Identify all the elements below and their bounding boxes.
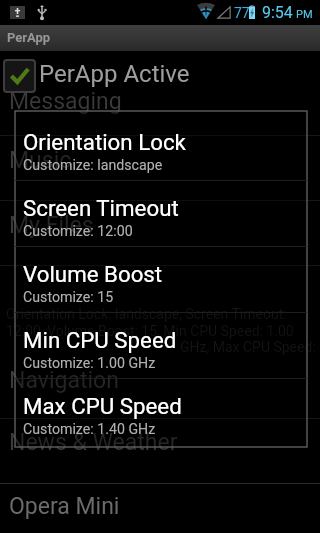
other: USB connected (37, 5, 47, 20)
staticText: Customize: 1.00 GHz (23, 355, 156, 372)
staticText: GHz, Max CPU Speed: 1.40 GHz (180, 339, 320, 355)
staticText: My Files (9, 212, 94, 239)
staticText: PerApp (7, 30, 51, 45)
staticText: Customize: 12:00 (23, 223, 133, 240)
staticText: PerApp Active (39, 60, 190, 88)
button[interactable]: Volume Boost (15, 247, 307, 312)
button[interactable]: Max CPU Speed (15, 379, 307, 444)
staticText: 12:00, Volume Boost: 15, Min CPU Speed: … (6, 323, 294, 339)
staticText: Orientation Lock: landscape, Screen Time… (6, 306, 287, 322)
staticText: 9:54 (262, 3, 293, 22)
staticText: Customize: landscape (23, 157, 163, 174)
staticText: Messaging (9, 88, 122, 115)
staticText: Max CPU Speed (23, 393, 182, 419)
other: Battery (249, 5, 255, 19)
staticText: Customize: 1.40 GHz (23, 421, 156, 438)
staticText: Min CPU Speed (23, 327, 177, 353)
staticText: PM (296, 8, 313, 21)
staticText: 77 (234, 5, 250, 21)
button[interactable]: PerApp Active (0, 53, 320, 92)
staticText: News & Weather (9, 429, 178, 456)
staticText: Screen Timeout (23, 195, 179, 221)
button[interactable]: Messaging (0, 82, 320, 118)
staticText: Opera Mini (9, 493, 120, 520)
button[interactable]: News & Weather (0, 423, 320, 459)
staticText: Volume Boost (23, 261, 163, 287)
button[interactable]: Screen Timeout (15, 181, 307, 246)
button[interactable]: Orientation Lock (15, 115, 307, 180)
other: Download (10, 6, 25, 19)
button[interactable]: My Files (0, 206, 320, 242)
button[interactable]: Navigation (0, 361, 320, 397)
button[interactable]: Music (0, 141, 320, 177)
button[interactable]: Opera Mini (0, 487, 320, 523)
staticText: Navigation (9, 367, 119, 394)
staticText: Orientation Lock (23, 129, 186, 155)
other: Signal (217, 6, 231, 19)
button[interactable]: Min CPU Speed (15, 313, 307, 378)
other: Wi-Fi (197, 5, 215, 19)
staticText: Customize: 15 (23, 289, 114, 306)
staticText: Music (9, 147, 72, 174)
